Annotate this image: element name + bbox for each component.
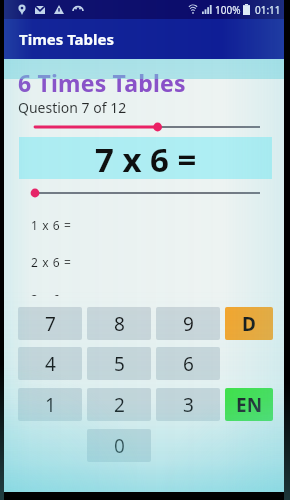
- button[interactable]: 3: [156, 388, 220, 421]
- button[interactable]: 5: [87, 347, 151, 380]
- staticText: 5: [114, 351, 125, 377]
- button[interactable]: D: [225, 307, 273, 340]
- staticText: 1: [45, 392, 56, 418]
- staticText: 2 x 6 =: [31, 254, 72, 270]
- staticText: 6 Times Tables: [18, 67, 186, 98]
- button[interactable]: 8: [87, 307, 151, 340]
- staticText: 01:11: [255, 3, 281, 17]
- staticText: 7: [45, 311, 56, 337]
- staticText: 6: [183, 351, 194, 377]
- button[interactable]: 9: [156, 307, 220, 340]
- button[interactable]: 1: [18, 388, 82, 421]
- button[interactable]: 4 x 6 =: [4, 317, 284, 354]
- staticText: 0: [114, 433, 125, 459]
- staticText: 4: [45, 351, 56, 377]
- staticText: Times Tables: [19, 29, 115, 49]
- button[interactable]: 3 x 6 =: [4, 280, 284, 317]
- button[interactable]: 2: [87, 388, 151, 421]
- button[interactable]: 7 x 6 =: [19, 137, 272, 179]
- button[interactable]: EN: [225, 388, 273, 421]
- staticText: 3: [183, 392, 194, 418]
- staticText: EN: [236, 392, 263, 418]
- staticText: 2: [114, 392, 125, 418]
- staticText: 100%: [215, 3, 241, 17]
- button[interactable]: 6: [156, 347, 220, 380]
- staticText: D: [242, 311, 256, 337]
- staticText: 7 x 6 =: [95, 137, 197, 179]
- staticText: 8: [114, 311, 125, 337]
- button[interactable]: 1 x 6 =: [4, 206, 284, 243]
- button[interactable]: 4: [18, 347, 82, 380]
- button[interactable]: Times Tables: [4, 19, 284, 59]
- staticText: 9: [183, 311, 194, 337]
- staticText: Question 7 of 12: [18, 98, 127, 117]
- staticText: 3 x 6 =: [31, 291, 72, 307]
- button[interactable]: 7: [18, 307, 82, 340]
- button[interactable]: 0: [87, 429, 151, 462]
- staticText: 1 x 6 =: [31, 217, 72, 233]
- button[interactable]: 2 x 6 =: [4, 243, 284, 280]
- staticText: 4 x 6 =: [31, 328, 72, 344]
